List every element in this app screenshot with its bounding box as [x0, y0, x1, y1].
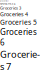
staticText: Groceries 4	[0, 11, 28, 18]
staticText: Groceries 1	[0, 0, 9, 2]
staticText: Groceries 5	[0, 18, 37, 27]
staticText: Groceries 2	[0, 2, 16, 5]
staticText: Groceries 7	[0, 48, 40, 72]
staticText: Groceries 6	[0, 27, 37, 48]
staticText: Groceries 3	[0, 5, 21, 11]
